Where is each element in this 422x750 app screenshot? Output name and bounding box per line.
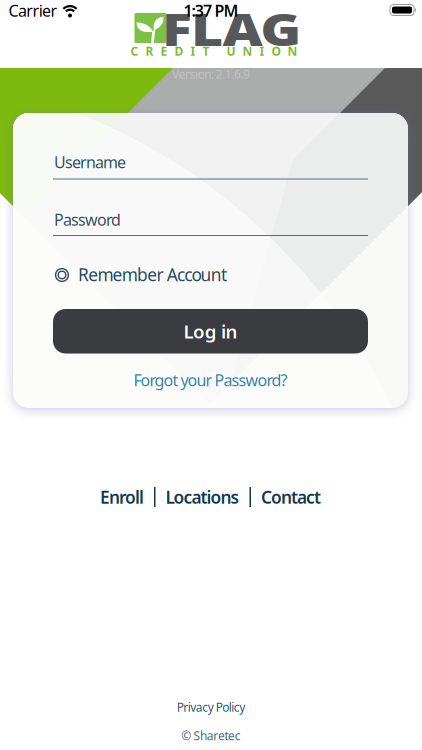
button[interactable]: Log in bbox=[53, 309, 368, 353]
button[interactable]: Password bbox=[53, 209, 368, 236]
button[interactable]: Locations bbox=[165, 485, 239, 508]
staticText: Carrier bbox=[9, 0, 57, 21]
staticText: Password bbox=[54, 209, 121, 230]
staticText: CREDIT UNION bbox=[130, 43, 297, 59]
staticText: Locations bbox=[165, 485, 239, 508]
staticText: © Sharetec bbox=[181, 727, 241, 743]
button[interactable]: Contact bbox=[261, 485, 321, 508]
staticText: Version: 2.1.6.9 bbox=[172, 66, 250, 82]
staticText: Forgot your Password? bbox=[133, 369, 287, 391]
staticText: Log in bbox=[183, 319, 237, 344]
staticText: Contact bbox=[261, 485, 321, 508]
button[interactable]: © Sharetec bbox=[181, 727, 241, 743]
button[interactable]: Forgot your Password? bbox=[133, 369, 287, 391]
staticText: Privacy Policy bbox=[177, 699, 245, 715]
staticText: Enroll bbox=[100, 485, 144, 508]
staticText: Username bbox=[54, 151, 126, 173]
button[interactable]: Privacy Policy bbox=[177, 699, 245, 715]
button[interactable]: Remember Account bbox=[52, 263, 232, 285]
staticText: Remember Account bbox=[78, 263, 227, 286]
button[interactable]: Enroll bbox=[100, 485, 144, 508]
staticText: 1:37 PM bbox=[183, 0, 239, 21]
button[interactable]: Username bbox=[53, 151, 368, 179]
staticText: FLAG bbox=[176, 0, 287, 58]
